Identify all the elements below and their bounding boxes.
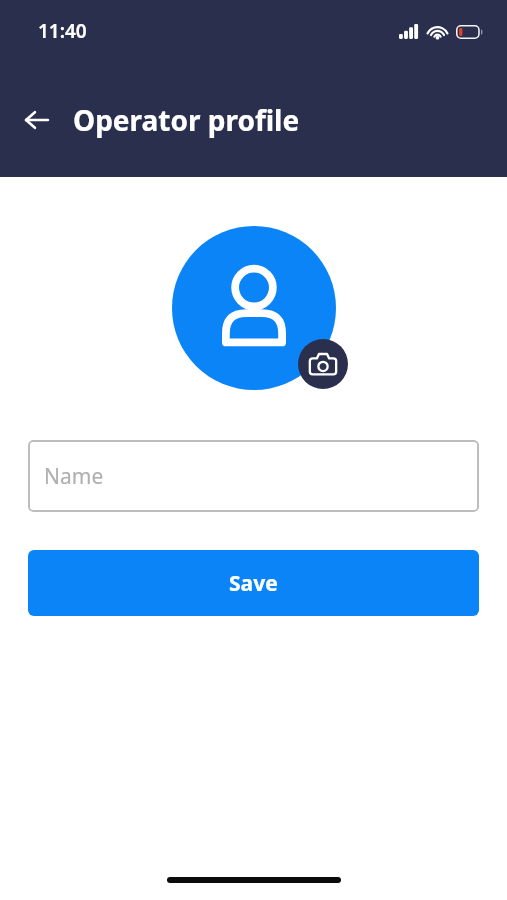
staticText: 11:40 <box>38 18 87 44</box>
button[interactable]: Profile photo <box>172 226 336 390</box>
button[interactable]: Save <box>28 550 479 616</box>
staticText: Save <box>229 569 278 598</box>
button[interactable]: Back <box>14 97 60 143</box>
staticText: Name <box>44 462 104 491</box>
button[interactable]: Change photo <box>298 339 348 389</box>
button[interactable]: Name <box>28 440 479 512</box>
staticText: Operator profile <box>73 101 300 139</box>
